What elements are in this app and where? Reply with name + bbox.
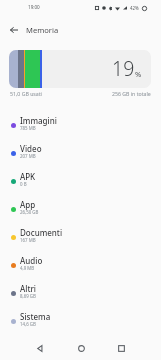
button[interactable]: Immagini — [0, 111, 161, 139]
staticText: Documenti — [20, 227, 63, 238]
staticText: Memoria — [26, 25, 59, 35]
staticText: 51,0 GB usati — [10, 90, 42, 97]
button[interactable]: Audio — [0, 251, 161, 279]
staticText: 256 GB in totale — [112, 90, 151, 97]
staticText: Sistema — [20, 311, 51, 322]
button[interactable]: Recents — [101, 336, 141, 360]
staticText: Immagini — [20, 115, 57, 126]
button[interactable]: Home — [61, 336, 101, 360]
staticText: Video — [20, 143, 42, 154]
button[interactable]: Video — [0, 139, 161, 167]
staticText: 26,50 GB — [20, 209, 39, 215]
staticText: Audio — [20, 255, 43, 266]
staticText: 14,6 GB — [20, 321, 36, 327]
staticText: 4,9 MB — [20, 265, 35, 271]
staticText: 19 — [112, 55, 135, 82]
staticText: 785 MB — [20, 125, 36, 131]
button[interactable]: Back — [20, 336, 61, 360]
staticText: % — [135, 69, 142, 79]
staticText: 0 B — [20, 181, 27, 187]
button[interactable]: App — [0, 195, 161, 223]
button[interactable]: APK — [0, 167, 161, 195]
staticText: 167 MB — [20, 237, 36, 243]
staticText: App — [20, 199, 36, 210]
staticText: 207 MB — [20, 153, 36, 159]
button[interactable]: Documenti — [0, 223, 161, 251]
button[interactable]: Sistema — [0, 307, 161, 335]
staticText: 42% — [130, 5, 139, 11]
button[interactable]: Back — [2, 18, 26, 42]
staticText: Altri — [20, 283, 37, 294]
staticText: 19:00 — [28, 4, 40, 10]
staticText: APK — [20, 171, 36, 182]
staticText: 8,69 GB — [20, 293, 36, 299]
button[interactable]: Altri — [0, 279, 161, 307]
